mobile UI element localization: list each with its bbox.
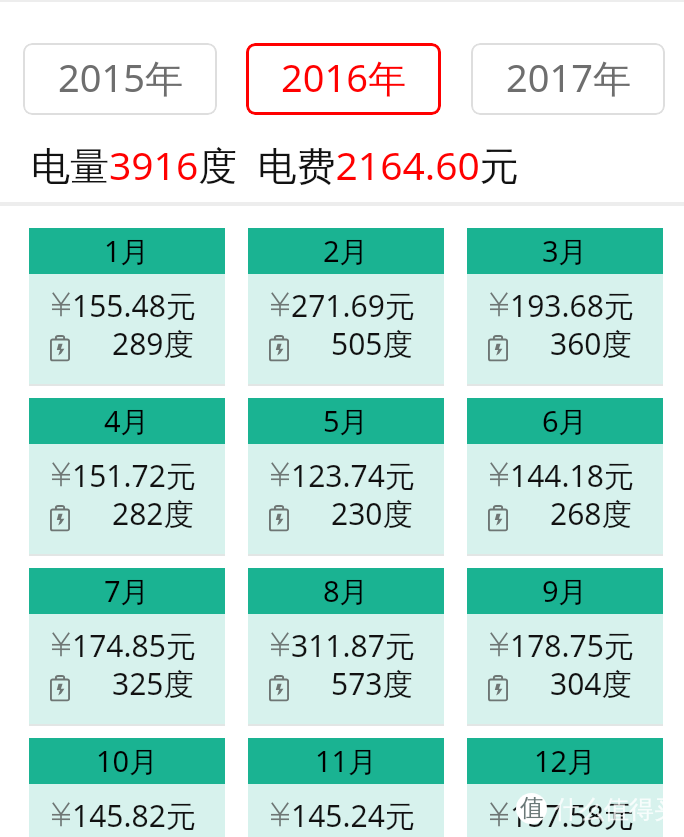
button[interactable]: 8月	[248, 568, 444, 726]
other: Electricity bill in yuan	[52, 292, 70, 317]
button[interactable]: 2月	[248, 228, 444, 386]
staticText: 1月	[104, 231, 150, 271]
other: Electricity used in kWh	[269, 335, 289, 362]
button[interactable]: 11月	[248, 738, 444, 837]
other: Electricity bill in yuan	[52, 632, 70, 657]
button[interactable]: 4月	[29, 398, 225, 556]
staticText: 3月	[542, 231, 588, 271]
other: Electricity bill in yuan	[271, 802, 289, 827]
staticText: 电量3916度 电费2164.60元	[31, 138, 519, 191]
other: Electricity bill in yuan	[52, 802, 70, 827]
other: Electricity bill in yuan	[271, 462, 289, 487]
button[interactable]: 2015年	[23, 43, 217, 115]
staticText: 311.87元	[291, 625, 415, 666]
other: Electricity used in kWh	[488, 505, 508, 532]
staticText: 5月	[323, 401, 369, 441]
staticText: 12月	[534, 741, 597, 781]
staticText: 360度	[550, 323, 632, 364]
other: Electricity bill in yuan	[271, 292, 289, 317]
button[interactable]: 3月	[467, 228, 663, 386]
other: Electricity bill in yuan	[271, 632, 289, 657]
staticText: 8月	[323, 571, 369, 611]
staticText: 230度	[331, 493, 413, 534]
staticText: 151.72元	[72, 455, 196, 496]
staticText: 2015年	[58, 51, 183, 103]
other: Electricity bill in yuan	[490, 802, 508, 827]
button[interactable]: 1月	[29, 228, 225, 386]
other: Electricity bill in yuan	[490, 292, 508, 317]
button[interactable]: 12月	[467, 738, 663, 837]
other: Electricity bill in yuan	[490, 632, 508, 657]
staticText: 174.85元	[72, 625, 196, 666]
staticText: 282度	[112, 493, 194, 534]
staticText: 10月	[96, 741, 159, 781]
staticText: 2017年	[506, 51, 631, 103]
button[interactable]: 6月	[467, 398, 663, 556]
staticText: 289度	[112, 323, 194, 364]
other: Electricity bill in yuan	[52, 462, 70, 487]
staticText: 325度	[112, 663, 194, 704]
button[interactable]: 2017年	[471, 43, 665, 115]
button[interactable]: 9月	[467, 568, 663, 726]
staticText: 145.82元	[72, 795, 196, 836]
staticText: 178.75元	[510, 625, 634, 666]
staticText: 304度	[550, 663, 632, 704]
staticText: 145.24元	[291, 795, 415, 836]
button[interactable]: 7月	[29, 568, 225, 726]
other: Electricity bill in yuan	[490, 462, 508, 487]
staticText: 4月	[104, 401, 150, 441]
staticText: 157.58元	[510, 795, 634, 836]
other: Electricity used in kWh	[488, 335, 508, 362]
other: Electricity used in kWh	[488, 675, 508, 702]
button[interactable]: 2016年	[246, 43, 441, 115]
button[interactable]: 10月	[29, 738, 225, 837]
staticText: 193.68元	[510, 285, 634, 326]
staticText: 268度	[550, 493, 632, 534]
staticText: 2016年	[281, 51, 406, 103]
staticText: 144.18元	[510, 455, 634, 496]
staticText: 505度	[331, 323, 413, 364]
staticText: 6月	[542, 401, 588, 441]
other: Electricity used in kWh	[50, 505, 70, 532]
staticText: 2月	[323, 231, 369, 271]
staticText: 值	[520, 793, 544, 823]
staticText: 123.74元	[291, 455, 415, 496]
button[interactable]: 5月	[248, 398, 444, 556]
staticText: 9月	[542, 571, 588, 611]
other: Electricity used in kWh	[269, 675, 289, 702]
staticText: 7月	[104, 571, 150, 611]
staticText: 271.69元	[291, 285, 415, 326]
staticText: 什么值得买	[554, 794, 679, 825]
other: Electricity used in kWh	[50, 675, 70, 702]
other: Electricity used in kWh	[269, 505, 289, 532]
staticText: 155.48元	[72, 285, 196, 326]
other: Electricity used in kWh	[50, 335, 70, 362]
staticText: 11月	[315, 741, 378, 781]
staticText: 573度	[331, 663, 413, 704]
